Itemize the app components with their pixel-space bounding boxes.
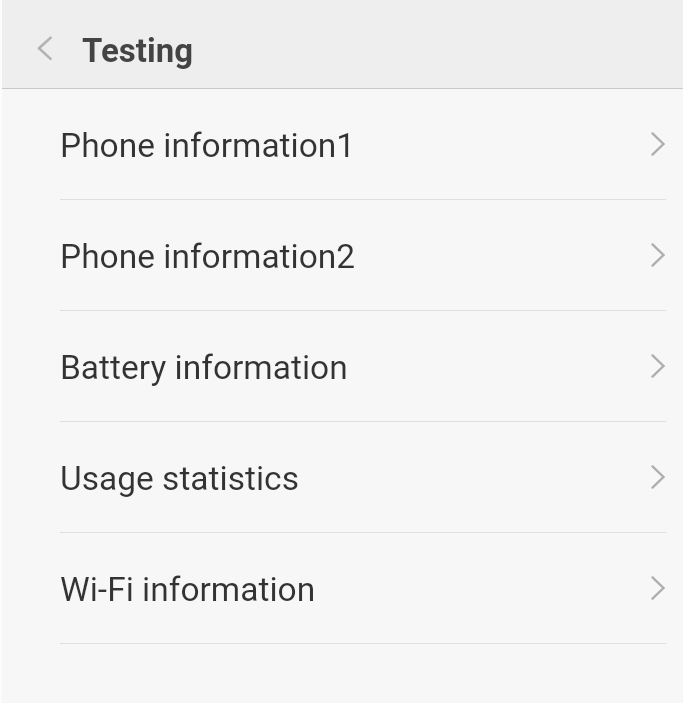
button[interactable]: Battery information — [0, 311, 683, 421]
button[interactable]: Phone information2 — [0, 200, 683, 310]
staticText: Phone information2 — [60, 237, 356, 276]
staticText: Phone information1 — [60, 126, 356, 165]
button[interactable]: Phone information1 — [0, 89, 683, 199]
staticText: Testing — [82, 31, 194, 70]
button[interactable]: Wi-Fi information — [0, 533, 683, 643]
staticText: Usage statistics — [60, 459, 299, 498]
button[interactable]: Usage statistics — [0, 422, 683, 532]
staticText: Battery information — [60, 348, 348, 387]
button[interactable]: Back — [0, 0, 76, 88]
staticText: Wi-Fi information — [60, 570, 316, 609]
